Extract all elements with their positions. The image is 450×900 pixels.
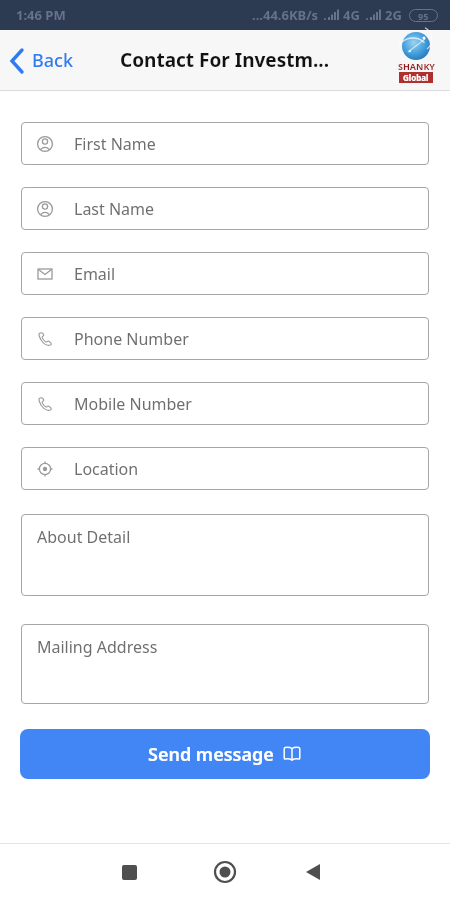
button[interactable]: First Name xyxy=(21,122,429,165)
staticText: Last Name xyxy=(74,198,155,220)
button[interactable]: Mobile Number xyxy=(21,382,429,425)
staticText: About Detail xyxy=(37,526,131,548)
staticText: First Name xyxy=(74,133,156,155)
staticText: 4G xyxy=(343,6,360,24)
staticText: ...44.6KB/s xyxy=(252,6,319,24)
button[interactable]: Back xyxy=(0,42,73,79)
button[interactable]: Location xyxy=(21,447,429,490)
staticText: 2G xyxy=(385,6,402,24)
staticText: Global xyxy=(403,72,429,83)
staticText: Email xyxy=(74,263,116,285)
staticText: Mobile Number xyxy=(74,393,192,415)
button[interactable]: Last Name xyxy=(21,187,429,230)
button[interactable] xyxy=(205,852,245,892)
staticText: Mailing Address xyxy=(37,636,158,658)
staticText: Send message xyxy=(148,742,274,767)
button[interactable]: Send message xyxy=(20,729,430,779)
button[interactable]: About Detail xyxy=(21,514,429,596)
button[interactable]: Email xyxy=(21,252,429,295)
staticText: Phone Number xyxy=(74,328,189,350)
button[interactable]: Mailing Address xyxy=(21,624,429,704)
button[interactable] xyxy=(293,852,333,892)
button[interactable]: Phone Number xyxy=(21,317,429,360)
button[interactable] xyxy=(109,852,149,892)
staticText: Back xyxy=(32,48,73,73)
staticText: 95 xyxy=(418,10,429,22)
staticText: Location xyxy=(74,458,139,480)
staticText: Contact For Investm... xyxy=(120,47,330,73)
staticText: SHANKY xyxy=(398,60,435,72)
staticText: 1:46 PM xyxy=(16,6,66,24)
